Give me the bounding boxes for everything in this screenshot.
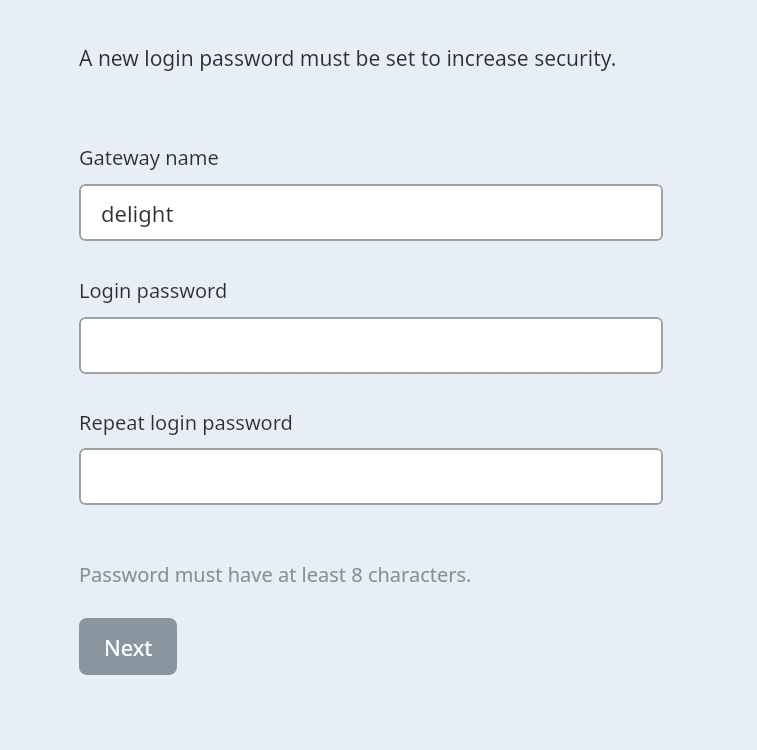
button[interactable]: Next (79, 618, 177, 675)
button[interactable]: delight (79, 184, 663, 241)
staticText: Gateway name (79, 144, 219, 171)
staticText: delight (101, 198, 174, 228)
button[interactable] (79, 448, 663, 505)
button[interactable] (79, 317, 663, 374)
staticText: Password must have at least 8 characters… (79, 561, 472, 588)
staticText: Repeat login password (79, 409, 293, 436)
staticText: Next (104, 632, 153, 662)
staticText: Login password (79, 277, 228, 304)
staticText: A new login password must be set to incr… (79, 44, 757, 73)
